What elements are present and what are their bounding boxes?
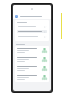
button[interactable]: Item status (15, 46, 49, 55)
button[interactable]: Item status (15, 73, 49, 82)
button[interactable]: Item status (42, 66, 47, 71)
button[interactable]: Item status (42, 57, 47, 62)
button[interactable] (17, 35, 47, 38)
button[interactable] (17, 25, 47, 28)
button[interactable] (17, 30, 47, 33)
button[interactable]: Menu (13, 13, 51, 19)
button[interactable]: Item status (42, 48, 47, 53)
button[interactable]: Item status (15, 55, 49, 64)
button[interactable]: Item status (42, 75, 47, 80)
button[interactable]: Item status (15, 64, 49, 73)
button[interactable]: Menu (15, 15, 18, 18)
